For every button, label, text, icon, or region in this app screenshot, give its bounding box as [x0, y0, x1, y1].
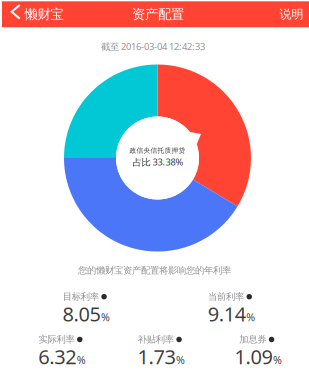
button[interactable]: 懒财宝: [0, 1, 69, 27]
staticText: 占比 33.38%: [132, 156, 183, 168]
staticText: %: [246, 310, 255, 324]
button[interactable]: 说明: [272, 1, 309, 27]
staticText: %: [101, 310, 110, 324]
button[interactable]: 目标利率: [0, 0, 309, 390]
staticText: 截至 2016-03-04 12:42:33: [101, 40, 205, 53]
button[interactable]: 当前利率: [0, 0, 309, 390]
staticText: 加息券: [239, 334, 266, 345]
staticText: 补贴利率: [138, 334, 174, 345]
staticText: 8.05: [62, 300, 100, 327]
staticText: 1.73: [138, 343, 176, 370]
staticText: 政信央信托质押贷: [129, 146, 185, 155]
staticText: 您的懒财宝资产配置将影响您的年利率: [78, 265, 231, 276]
staticText: %: [77, 353, 86, 367]
staticText: %: [176, 353, 185, 367]
staticText: 当前利率: [208, 291, 244, 303]
staticText: 1.09: [235, 343, 273, 370]
staticText: 懒财宝: [24, 6, 63, 23]
button[interactable]: 补贴利率: [0, 0, 309, 390]
staticText: 说明: [279, 7, 303, 22]
staticText: 9.14: [208, 300, 246, 327]
button[interactable]: 实际利率: [0, 0, 309, 390]
button[interactable]: 加息券: [0, 0, 309, 390]
staticText: 资产配置: [132, 6, 184, 23]
staticText: 实际利率: [38, 334, 74, 345]
staticText: 目标利率: [63, 291, 99, 303]
staticText: %: [273, 353, 282, 367]
staticText: 6.32: [38, 343, 76, 370]
